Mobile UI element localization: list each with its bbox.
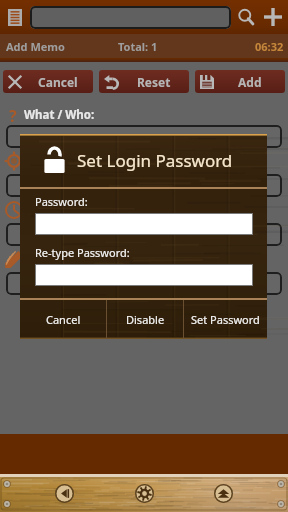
button[interactable]: Recent [214,484,233,503]
staticText: Reset [137,74,171,90]
staticText: Disable [126,312,165,327]
button[interactable]: Search field [30,6,231,29]
button[interactable]: Add [261,5,285,29]
staticText: What / Who: [24,107,95,123]
button[interactable]: Re-type password input [35,264,253,286]
staticText: Password: [35,194,88,209]
button[interactable]: Cancel [3,70,93,93]
button[interactable]: Back [55,484,74,503]
staticText: ? [9,105,17,125]
button[interactable]: Home [135,484,154,503]
staticText: Set Password [191,312,260,327]
button[interactable]: Text field [6,174,282,197]
button[interactable]: Add [195,70,285,93]
button[interactable]: Time [4,200,24,220]
staticText: Set Login Password [77,149,233,172]
button[interactable]: Text field [6,223,282,246]
staticText: Add [238,74,262,90]
staticText: Add Memo [6,39,65,54]
staticText: Cancel [38,74,78,90]
button[interactable]: Text field [6,125,282,148]
staticText: Cancel [46,312,81,327]
button[interactable]: Note [4,249,24,269]
button[interactable]: Password input [35,213,253,235]
button[interactable]: Set Password [184,300,267,339]
staticText: Re-type Password: [35,245,130,260]
button[interactable]: Search [235,6,257,28]
button[interactable]: Location [4,151,24,171]
button[interactable]: Reset [99,70,189,93]
button[interactable]: Cancel [20,300,106,339]
button[interactable]: Menu [4,6,26,28]
staticText: 06:32 [255,39,284,54]
button[interactable]: Text field [6,272,282,295]
staticText: Total: 1 [118,39,158,54]
button[interactable]: Disable [107,300,183,339]
